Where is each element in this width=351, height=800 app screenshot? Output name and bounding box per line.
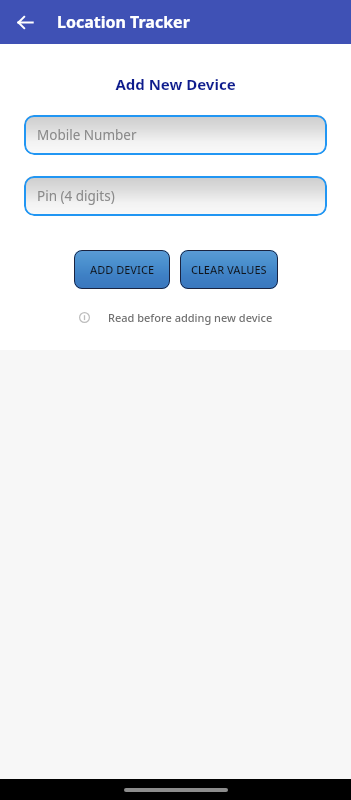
button[interactable]: ADD DEVICE bbox=[74, 250, 170, 289]
button[interactable]: CLEAR VALUES bbox=[180, 250, 278, 289]
staticText: Add New Device bbox=[0, 74, 351, 94]
staticText: Read before adding new device bbox=[108, 310, 273, 325]
staticText: Location Tracker bbox=[57, 11, 190, 33]
button[interactable]: Read before adding new device bbox=[0, 310, 351, 325]
staticText: CLEAR VALUES bbox=[191, 262, 267, 277]
button[interactable]: Pin (4 digits) bbox=[24, 176, 327, 216]
staticText: Mobile Number bbox=[37, 126, 137, 144]
staticText: Pin (4 digits) bbox=[37, 187, 115, 205]
button[interactable]: Mobile Number bbox=[24, 115, 327, 155]
button[interactable]: Back bbox=[9, 6, 41, 38]
staticText: ADD DEVICE bbox=[90, 262, 155, 277]
